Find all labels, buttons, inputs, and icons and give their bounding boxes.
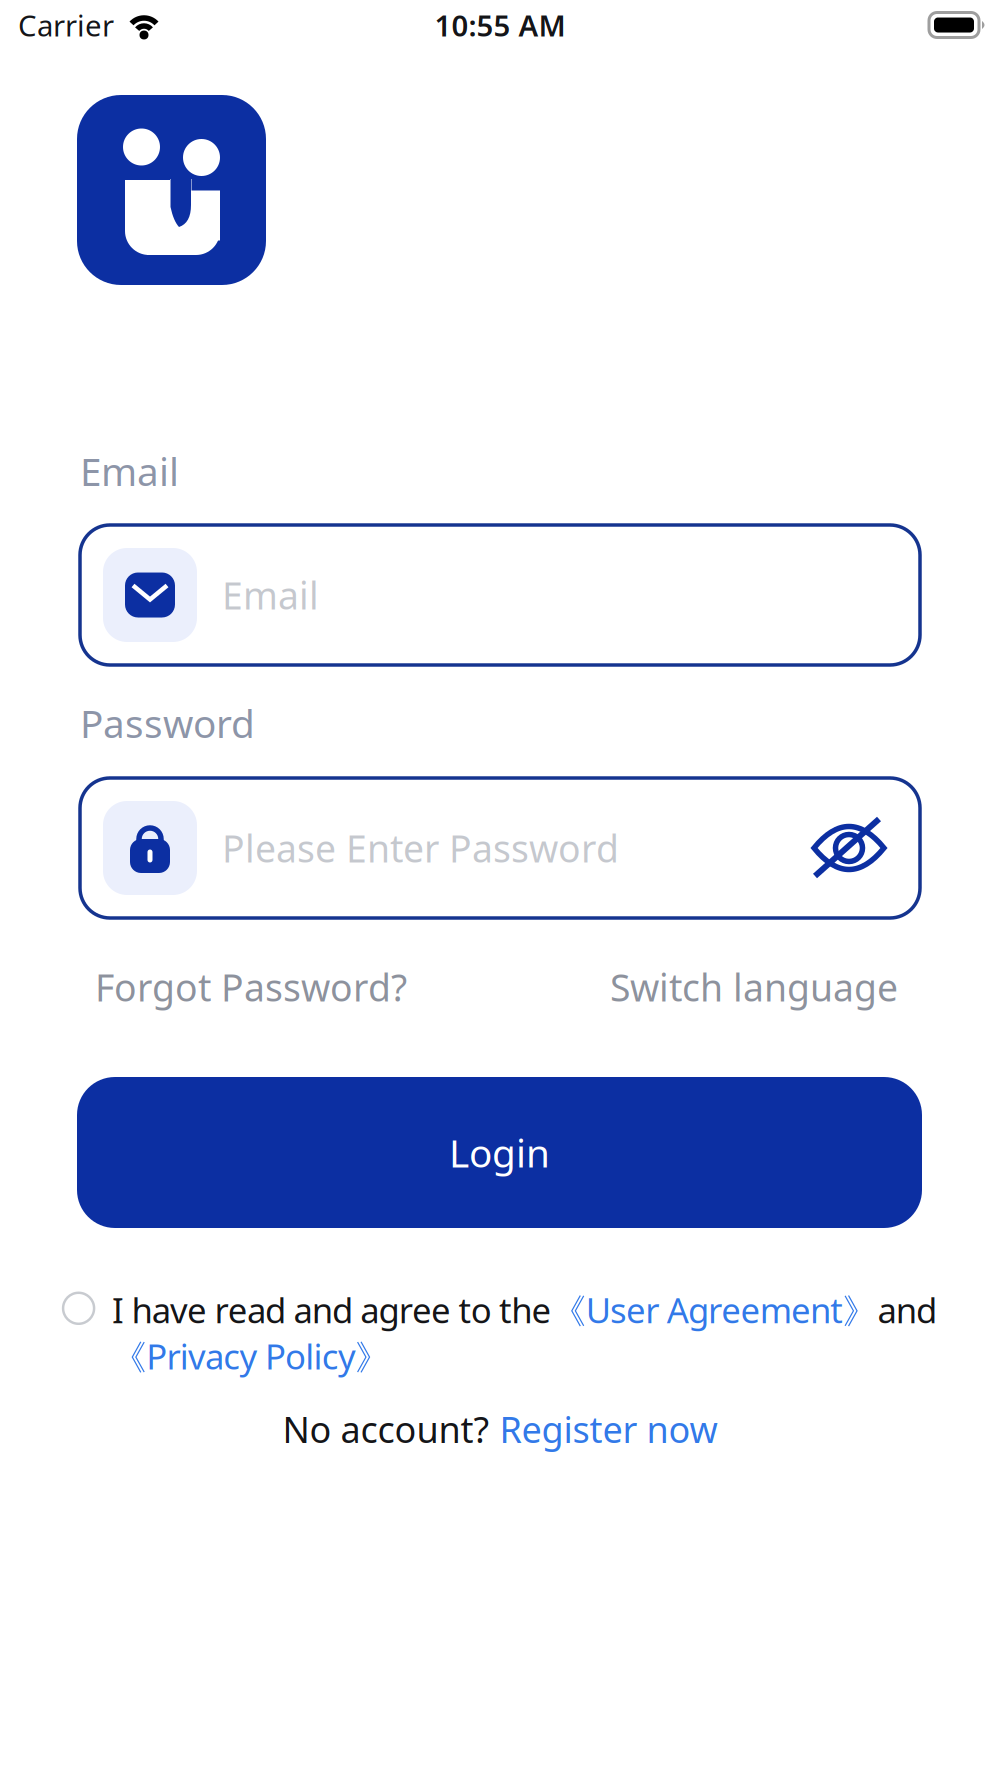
button[interactable]: Forgot Password? — [95, 962, 407, 1012]
staticText: Carrier — [18, 5, 114, 44]
staticText: Login — [449, 1127, 550, 1178]
staticText: Forgot Password? — [95, 962, 407, 1012]
staticText: Email — [80, 445, 179, 497]
button[interactable]: Switch language — [610, 962, 898, 1012]
staticText: Please Enter Password — [222, 823, 619, 873]
staticText: and — [877, 1287, 937, 1333]
button[interactable]: Email — [80, 525, 920, 665]
staticText: Email — [222, 570, 319, 620]
button[interactable]: Login — [77, 1077, 922, 1228]
staticText: Password — [80, 697, 255, 749]
button[interactable]: Please Enter Password — [80, 778, 920, 918]
button[interactable]: Agree to terms — [63, 1293, 94, 1324]
staticText: 《User Agreement》 — [551, 1287, 877, 1333]
button[interactable]: 《Privacy Policy》 — [112, 1333, 390, 1379]
staticText: No account? — [282, 1405, 489, 1453]
staticText: 《Privacy Policy》 — [112, 1333, 390, 1379]
staticText: Register now — [499, 1405, 717, 1453]
button[interactable]: Register now — [499, 1405, 717, 1453]
button[interactable]: 《User Agreement》 — [551, 1287, 877, 1333]
staticText: Switch language — [610, 962, 898, 1012]
staticText: I have read and agree to the — [112, 1287, 551, 1333]
button[interactable]: Show password — [811, 818, 887, 878]
staticText: 10:55 AM — [434, 5, 565, 44]
